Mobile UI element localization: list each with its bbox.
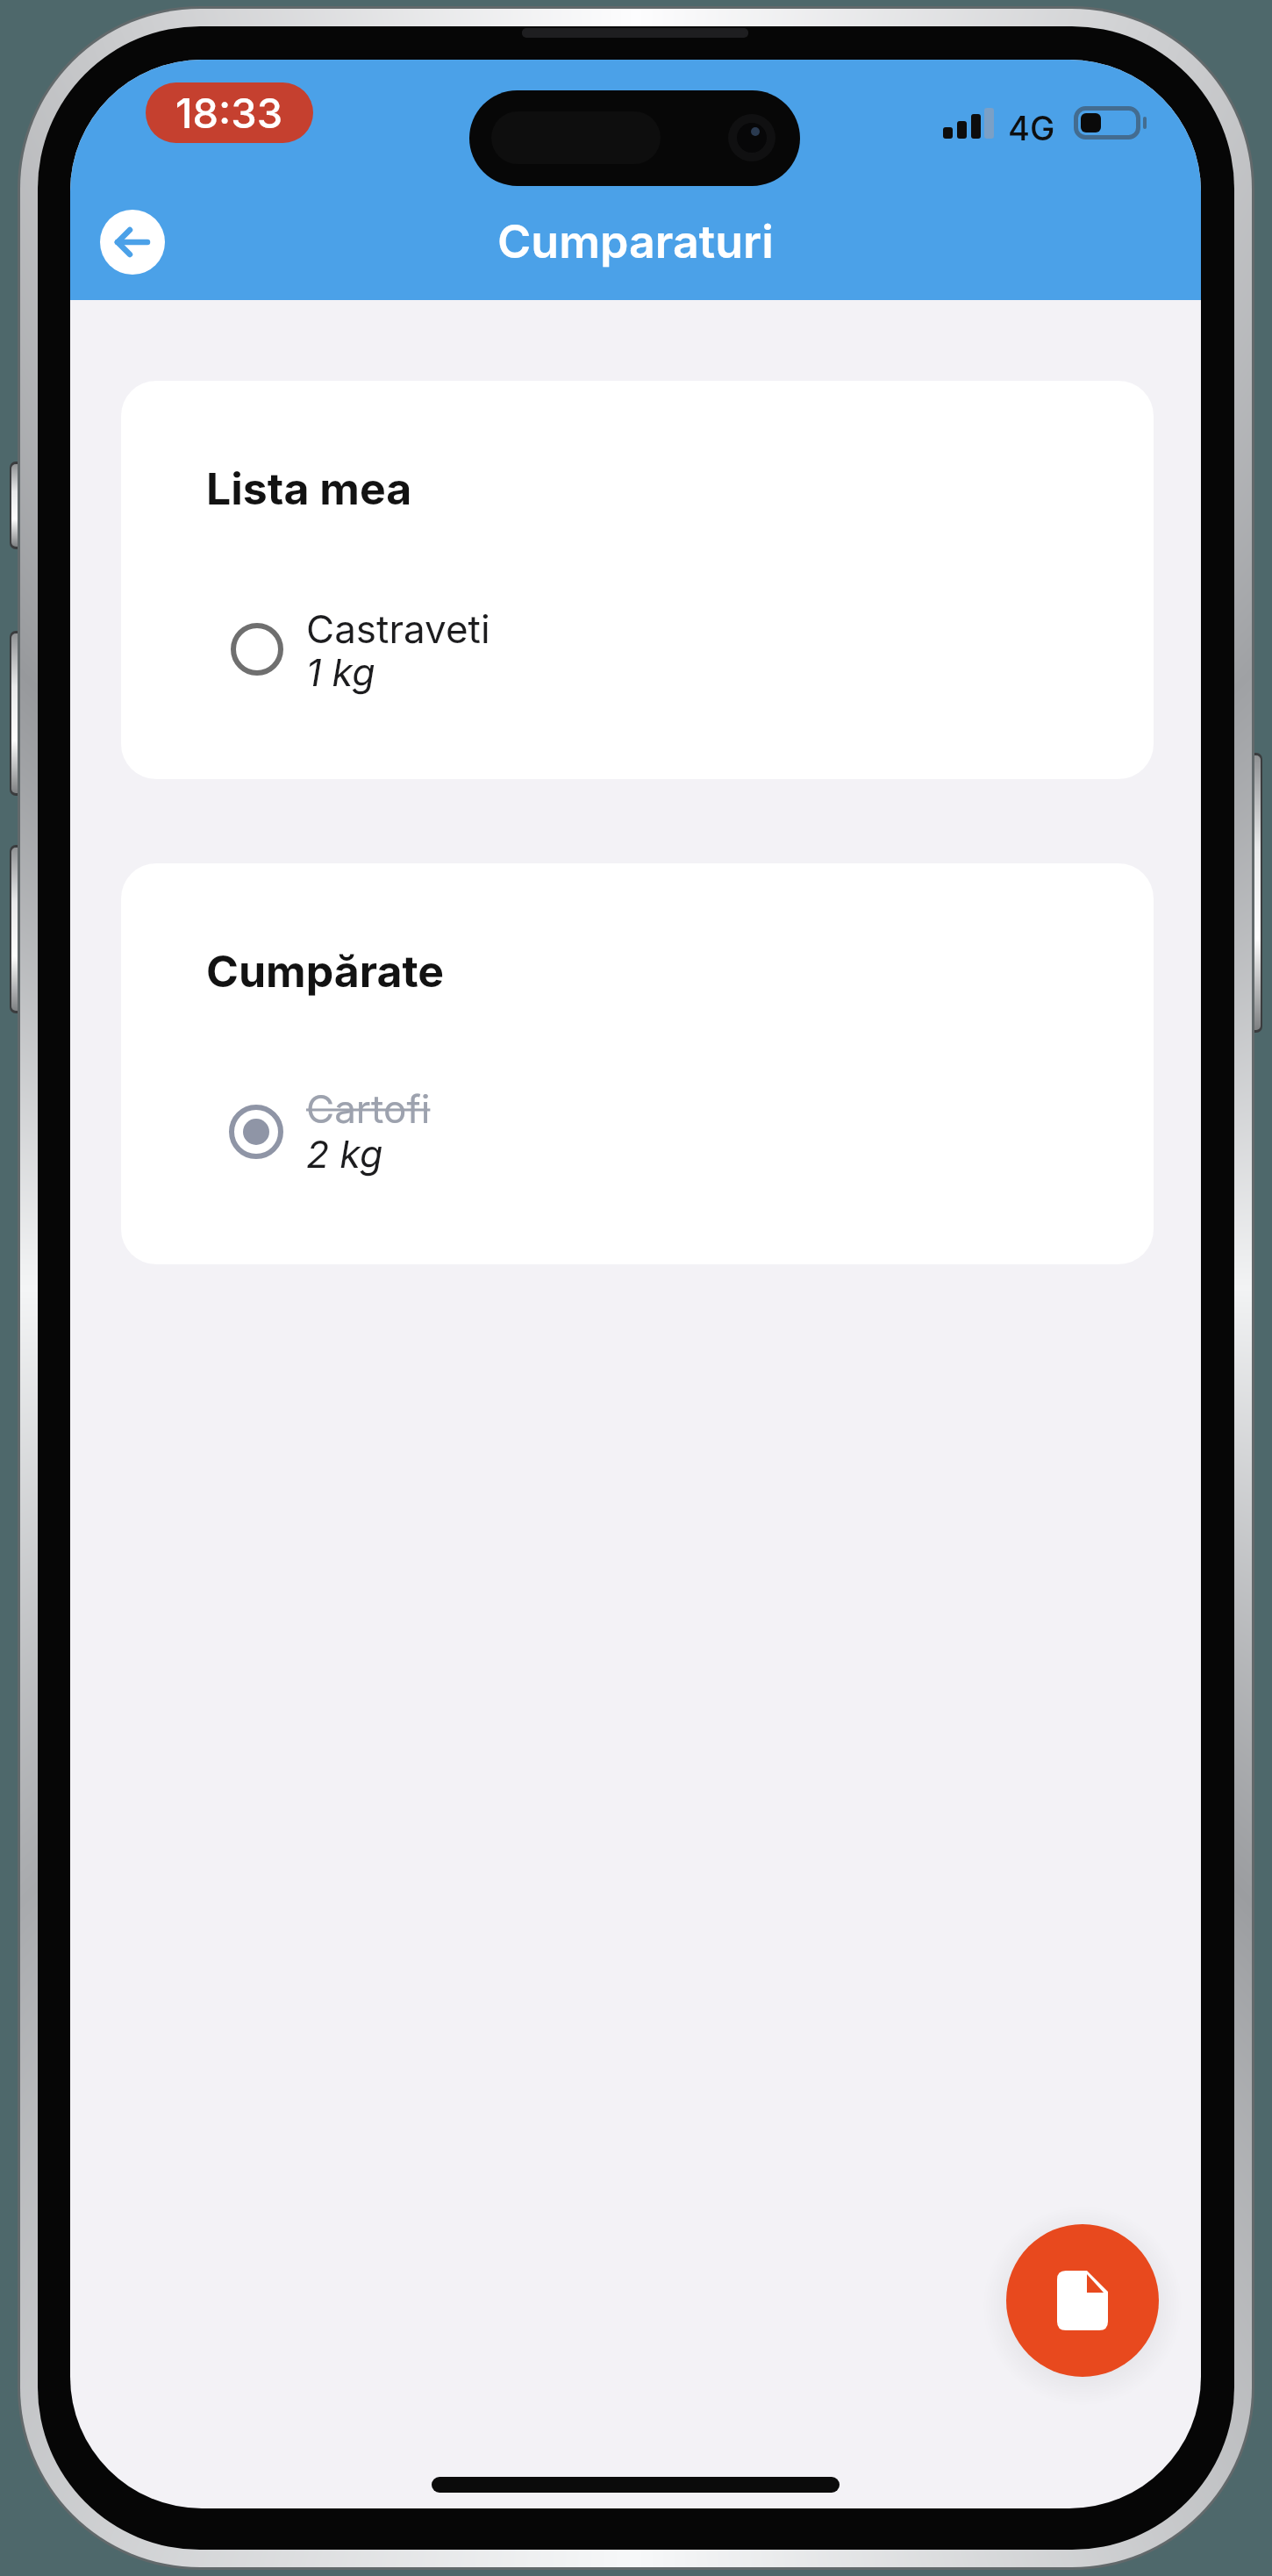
staticText: Castraveti	[306, 605, 490, 652]
staticText: Cumpărate	[206, 945, 445, 998]
button[interactable]	[1006, 2224, 1159, 2377]
staticText: 4G	[1008, 108, 1055, 141]
staticText: Lista mea	[206, 462, 412, 515]
button[interactable]	[100, 210, 165, 275]
staticText: 1 kg	[306, 649, 375, 695]
staticText: Cumparaturi	[497, 214, 774, 269]
staticText: 2 kg	[306, 1131, 383, 1177]
staticText: 18:33	[175, 88, 283, 138]
staticText: Cartofi	[306, 1085, 431, 1132]
button[interactable]: Castraveti	[218, 600, 1095, 705]
button[interactable]: Cartofi	[218, 1078, 1095, 1188]
button[interactable]: 18:33	[146, 82, 313, 143]
